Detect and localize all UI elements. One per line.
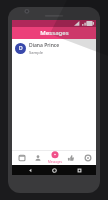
button[interactable]: Recent apps: [72, 165, 86, 175]
staticText: D: [19, 45, 23, 52]
button[interactable]: Settings: [80, 150, 95, 165]
button[interactable]: Messages: [47, 150, 62, 165]
button[interactable]: Home: [47, 165, 61, 175]
button[interactable]: D: [12, 39, 96, 57]
button[interactable]: Notifications: [63, 150, 78, 165]
staticText: Sample: [29, 50, 43, 55]
button[interactable]: Back: [23, 165, 37, 175]
button[interactable]: Calendar: [14, 150, 29, 165]
staticText: Diana Prince: [29, 42, 60, 49]
staticText: Messages: [48, 160, 62, 164]
staticText: Messages: [40, 29, 69, 37]
button[interactable]: People: [30, 150, 45, 165]
